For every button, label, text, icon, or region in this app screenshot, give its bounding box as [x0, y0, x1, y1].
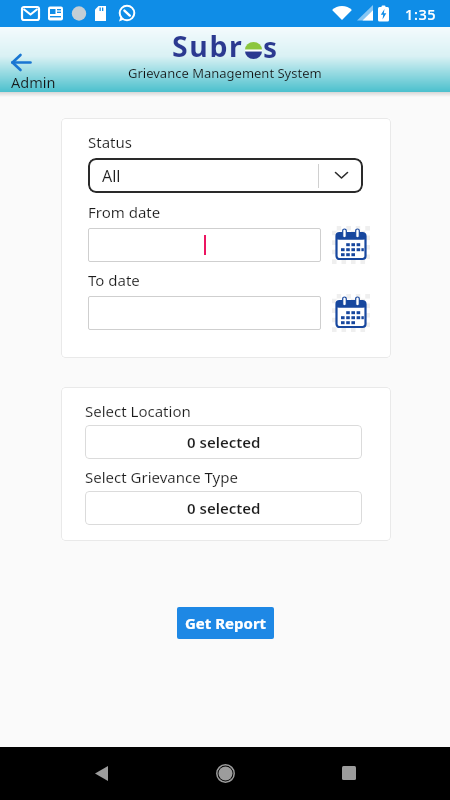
staticText: Select Location — [85, 401, 191, 421]
staticText: Subr — [172, 27, 244, 66]
button[interactable] — [332, 294, 370, 332]
button[interactable] — [205, 753, 245, 793]
button[interactable]: 0 selected — [85, 491, 362, 525]
button[interactable]: Admin — [11, 54, 56, 92]
staticText: All — [102, 165, 318, 187]
staticText: s — [263, 28, 278, 66]
staticText: From date — [88, 202, 161, 222]
button[interactable] — [81, 753, 121, 793]
staticText: To date — [88, 270, 140, 290]
button[interactable] — [329, 753, 369, 793]
staticText: 1:35 — [405, 4, 437, 24]
button[interactable] — [332, 226, 370, 264]
staticText: Admin — [11, 72, 56, 92]
button[interactable]: All — [88, 158, 363, 193]
staticText: Get Report — [185, 613, 267, 633]
staticText: 0 selected — [187, 498, 261, 518]
button[interactable] — [88, 228, 321, 262]
staticText: Status — [88, 132, 132, 152]
button[interactable] — [88, 296, 321, 330]
staticText: Select Grievance Type — [85, 467, 238, 487]
button[interactable]: 0 selected — [85, 425, 362, 459]
button[interactable]: Get Report — [177, 607, 274, 639]
staticText: Grievance Management System — [128, 64, 322, 82]
staticText: 0 selected — [187, 432, 261, 452]
